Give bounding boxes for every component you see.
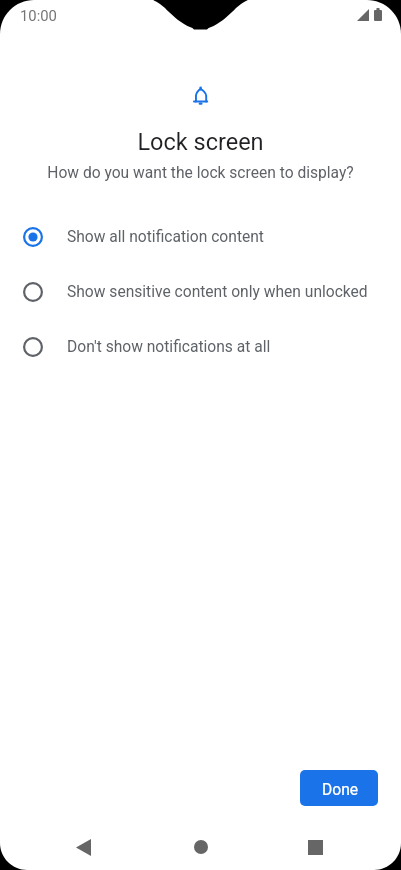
staticText: Show sensitive content only when unlocke…: [67, 283, 368, 301]
staticText: Lock screen: [0, 128, 401, 156]
staticText: Done: [322, 781, 359, 799]
button[interactable]: Don't show notifications at all: [0, 319, 401, 374]
staticText: How do you want the lock screen to displ…: [0, 164, 401, 182]
staticText: 10:00: [20, 7, 57, 24]
button[interactable]: Show sensitive content only when unlocke…: [0, 264, 401, 319]
staticText: Don't show notifications at all: [67, 338, 271, 356]
button[interactable]: Home: [172, 825, 229, 869]
button[interactable]: Done: [300, 770, 378, 806]
button[interactable]: Back: [55, 825, 112, 869]
button[interactable]: Show all notification content: [0, 209, 401, 264]
staticText: Show all notification content: [67, 228, 264, 246]
button[interactable]: Recent apps: [287, 825, 344, 869]
